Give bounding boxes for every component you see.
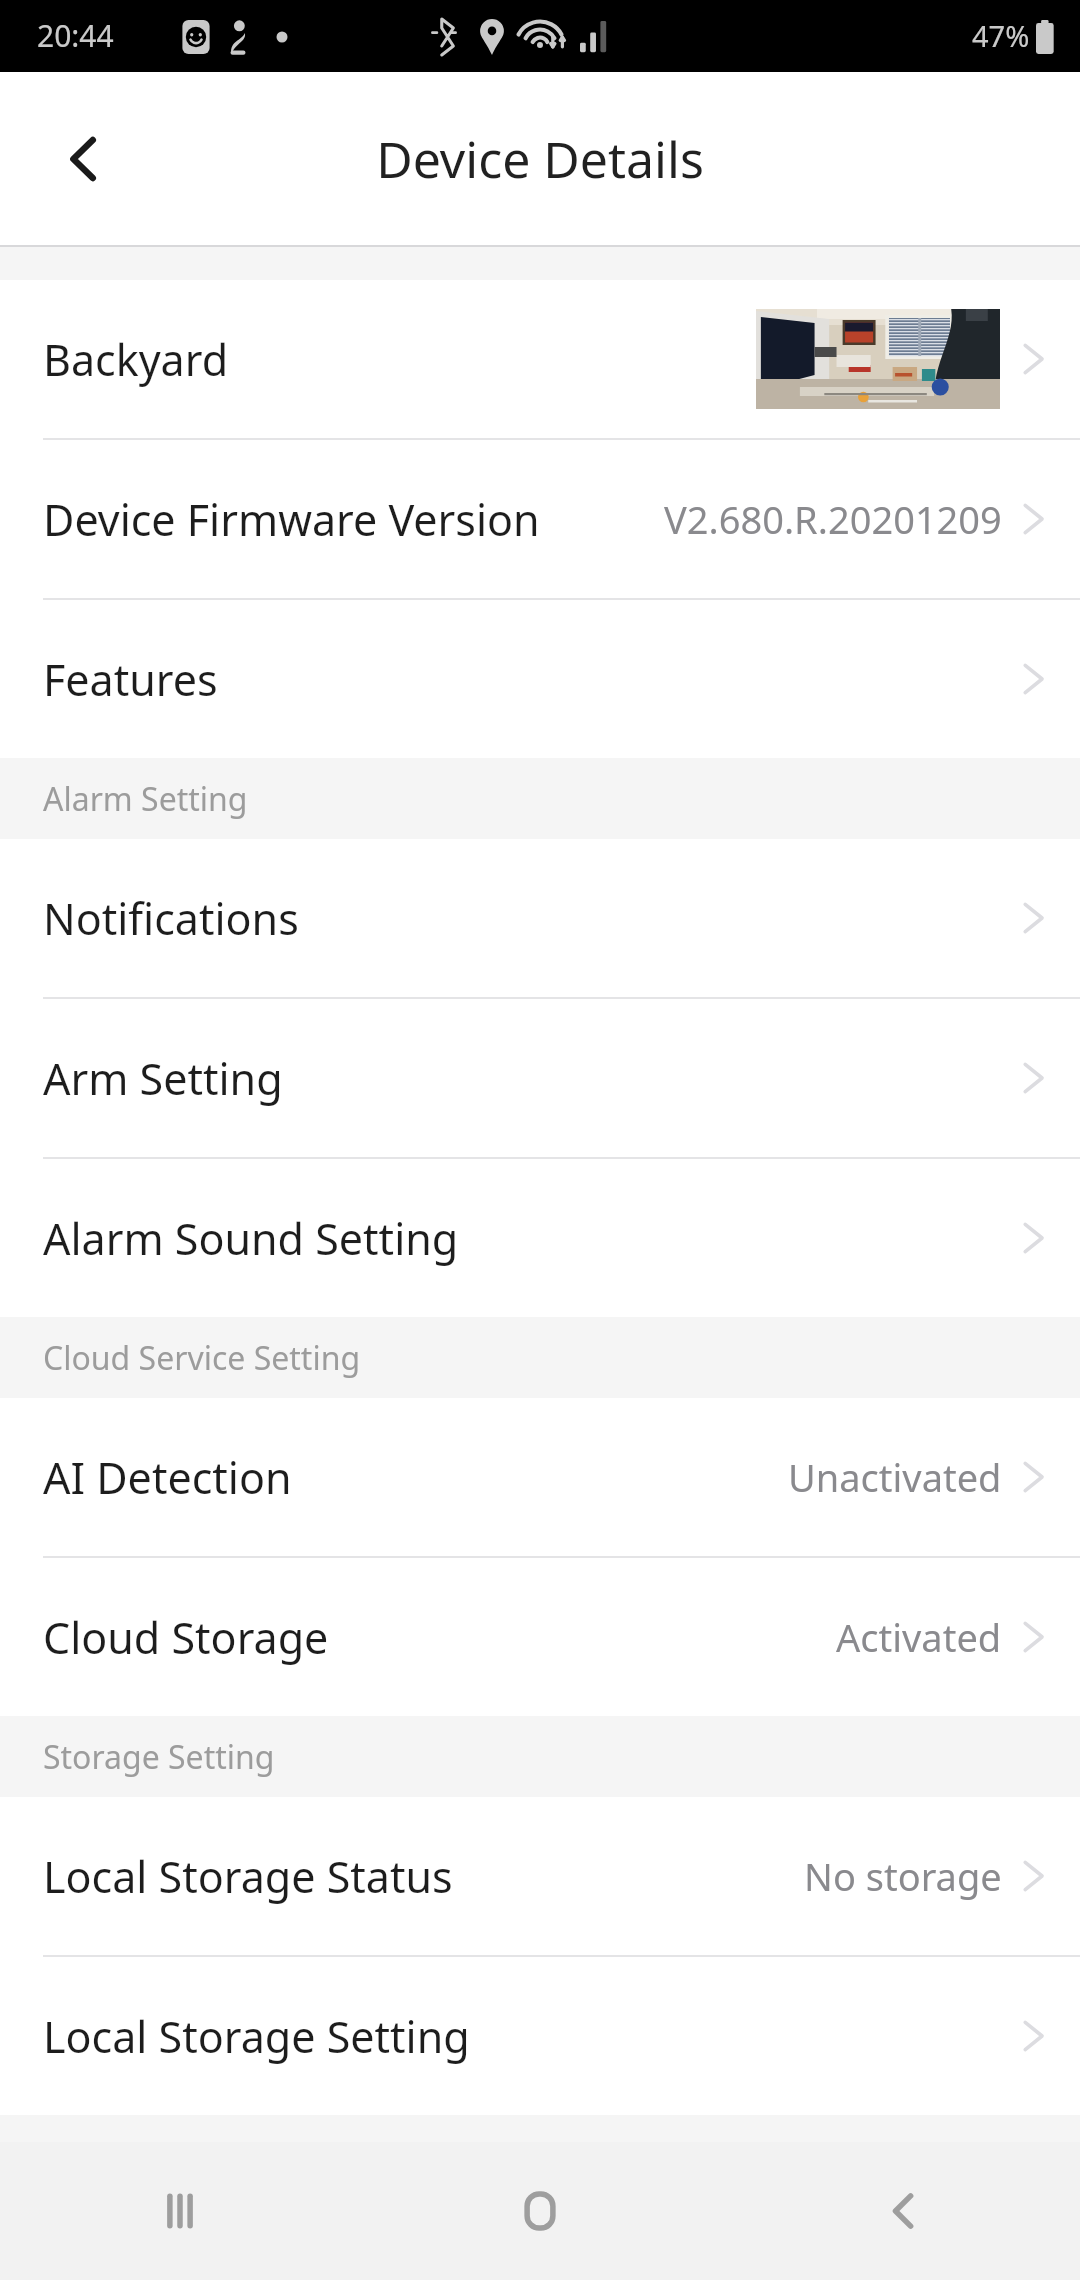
staticText: Activated: [836, 1611, 1002, 1663]
staticText: Unactivated: [788, 1451, 1002, 1503]
button[interactable]: Alarm Sound Setting: [0, 1159, 1080, 1317]
button[interactable]: Cloud Storage: [0, 1558, 1080, 1716]
button[interactable]: Back: [33, 114, 123, 204]
staticText: V2.680.R.20201209: [664, 493, 1002, 545]
staticText: Arm Setting: [43, 1049, 283, 1108]
staticText: 20:44: [37, 15, 114, 56]
button[interactable]: Recent apps: [0, 2142, 360, 2280]
button[interactable]: Backyard: [0, 280, 1080, 440]
staticText: Local Storage Status: [43, 1847, 453, 1906]
button[interactable]: Features: [0, 600, 1080, 758]
staticText: No storage: [804, 1850, 1002, 1902]
staticText: 47%: [972, 16, 1030, 55]
staticText: Alarm Sound Setting: [43, 1209, 459, 1268]
staticText: Device Details: [376, 125, 704, 193]
staticText: Cloud Storage: [43, 1608, 329, 1667]
button[interactable]: Home: [360, 2142, 720, 2280]
button[interactable]: AI Detection: [0, 1398, 1080, 1558]
button[interactable]: Device Firmware Version: [0, 440, 1080, 600]
button[interactable]: Arm Setting: [0, 999, 1080, 1159]
button[interactable]: Notifications: [0, 839, 1080, 999]
staticText: Device Firmware Version: [43, 490, 540, 549]
button[interactable]: Local Storage Setting: [0, 1957, 1080, 2115]
staticText: Cloud Service Setting: [43, 1336, 361, 1380]
button[interactable]: Local Storage Status: [0, 1797, 1080, 1957]
button[interactable]: Back: [720, 2142, 1080, 2280]
staticText: Local Storage Setting: [43, 2007, 470, 2066]
staticText: AI Detection: [43, 1448, 292, 1507]
staticText: Alarm Setting: [43, 777, 248, 821]
staticText: Features: [43, 650, 218, 709]
staticText: Backyard: [43, 330, 229, 389]
staticText: Notifications: [43, 889, 299, 948]
staticText: Storage Setting: [43, 1735, 275, 1779]
